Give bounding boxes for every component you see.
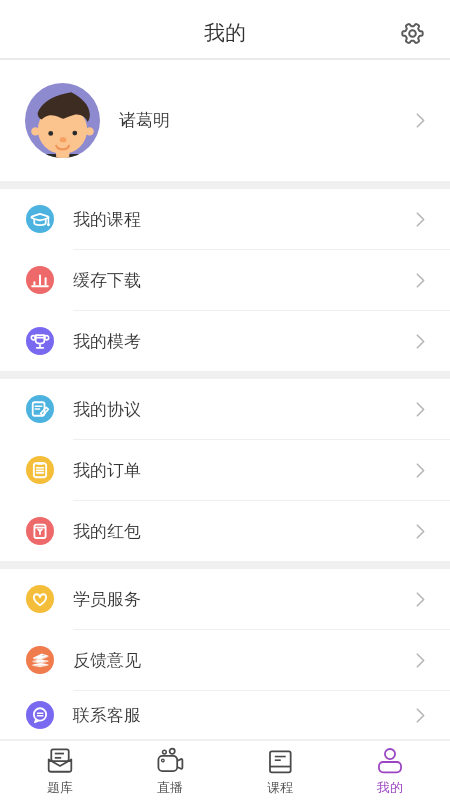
staticText: 题库 — [47, 779, 73, 795]
button[interactable]: 诸葛明 — [0, 60, 450, 181]
button[interactable]: Settings — [392, 13, 432, 53]
button[interactable]: 反馈意见 — [0, 630, 450, 690]
staticText: 反馈意见 — [73, 650, 141, 671]
staticText: 课程 — [267, 779, 293, 795]
staticText: 缓存下载 — [73, 270, 141, 291]
staticText: 我的红包 — [73, 521, 141, 542]
button[interactable]: 联系客服 — [0, 691, 450, 739]
button[interactable]: 学员服务 — [0, 569, 450, 629]
staticText: 我的协议 — [73, 399, 141, 420]
button[interactable]: 题库 — [5, 741, 115, 800]
button[interactable]: 我的订单 — [0, 440, 450, 500]
button[interactable]: 直播 — [115, 741, 225, 800]
staticText: 联系客服 — [73, 705, 141, 726]
staticText: 我的模考 — [73, 331, 141, 352]
staticText: 我的 — [204, 20, 246, 46]
staticText: 学员服务 — [73, 589, 141, 610]
staticText: 我的 — [377, 779, 403, 795]
button[interactable]: 我的红包 — [0, 501, 450, 561]
staticText: 我的订单 — [73, 460, 141, 481]
staticText: 我的课程 — [73, 209, 141, 230]
button[interactable]: 我的 — [335, 741, 445, 800]
button[interactable]: 缓存下载 — [0, 250, 450, 310]
staticText: 直播 — [157, 779, 183, 795]
button[interactable]: 我的模考 — [0, 311, 450, 371]
staticText: 诸葛明 — [119, 110, 170, 131]
button[interactable]: 我的协议 — [0, 379, 450, 439]
button[interactable]: 课程 — [225, 741, 335, 800]
button[interactable]: 我的课程 — [0, 189, 450, 249]
